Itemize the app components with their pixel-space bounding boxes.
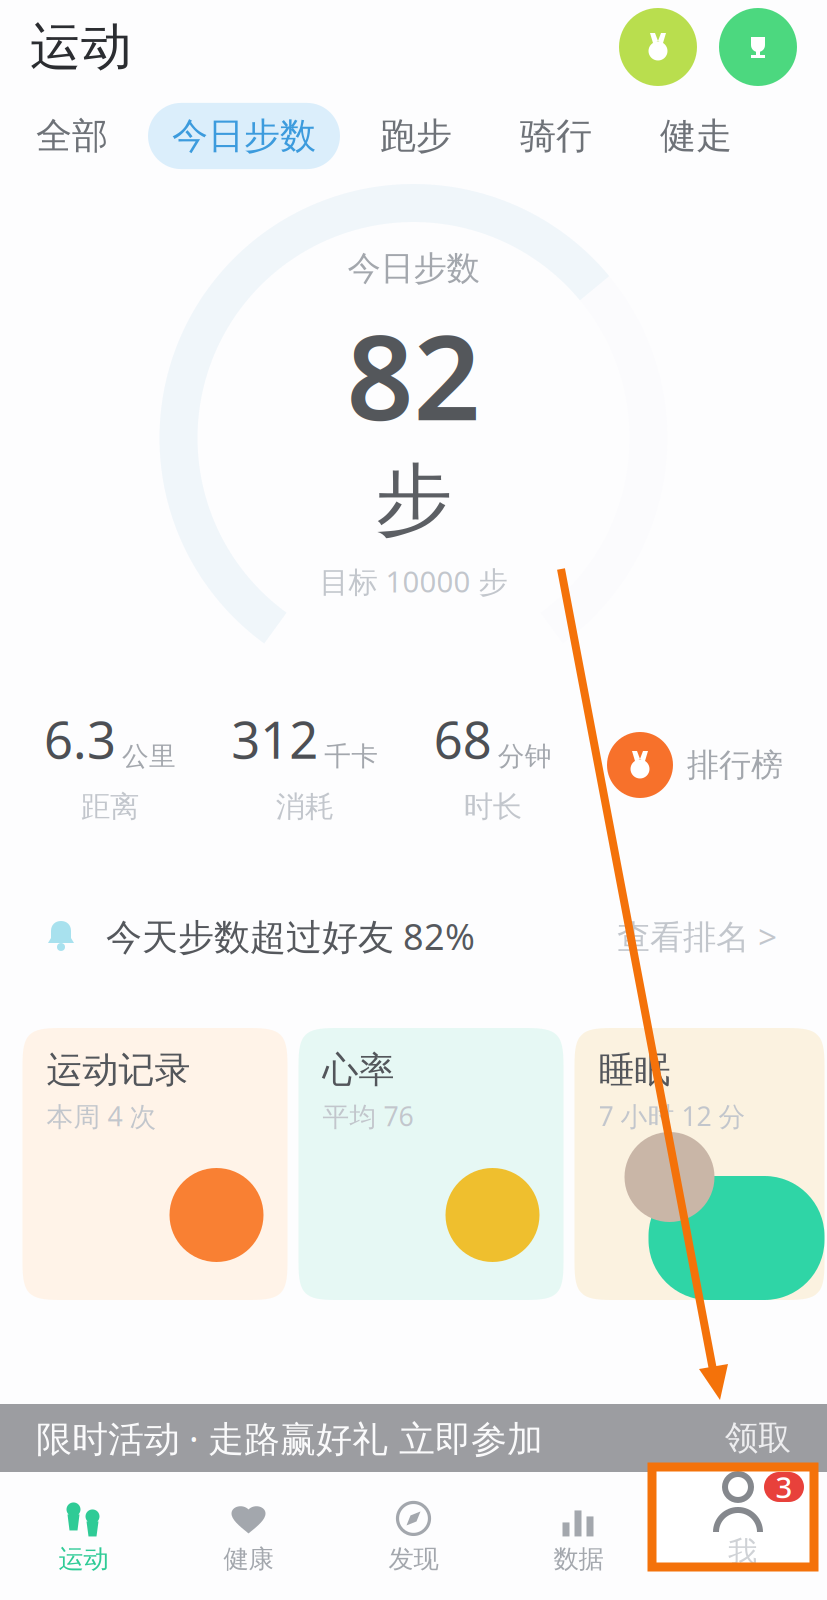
staticText: 心率 (322, 1048, 394, 1092)
staticText: 步 (375, 453, 452, 548)
button[interactable]: 健走 (636, 103, 756, 169)
staticText: 今日步数 (347, 248, 479, 289)
staticText: 目标 10000 步 (319, 562, 507, 601)
staticText: 今日步数 (172, 114, 316, 158)
staticText: 全部 (36, 114, 108, 158)
staticText: 82 (346, 297, 480, 453)
staticText: 312 (231, 705, 318, 773)
button[interactable]: 心率 (298, 1028, 563, 1300)
button[interactable]: 跑步 (356, 103, 476, 169)
staticText: 今天步数超过好友 82% (106, 912, 475, 960)
staticText: 跑步 (380, 114, 452, 158)
staticText: 数据 (553, 1543, 603, 1574)
button[interactable]: 运动记录 (22, 1028, 287, 1300)
staticText: 千卡 (324, 740, 378, 773)
button[interactable]: 限时活动 · 走路赢好礼 立即参加 (0, 1404, 827, 1472)
staticText: 本周 4 次 (46, 1098, 156, 1134)
button[interactable]: 发现 (331, 1480, 496, 1592)
staticText: 运动 (30, 16, 132, 78)
button[interactable]: 睡眠 (574, 1028, 824, 1300)
staticText: 时长 (464, 789, 522, 825)
staticText: 领取 (725, 1417, 791, 1458)
staticText: 消耗 (276, 789, 334, 825)
staticText: 睡眠 (598, 1048, 670, 1092)
staticText: 查看排名 > (617, 914, 777, 958)
button[interactable]: 排行榜 (607, 732, 783, 798)
button[interactable]: 今天步数超过好友 82% (0, 870, 827, 1002)
button[interactable]: Leaderboard (719, 8, 797, 86)
staticText: 7 小时 12 分 (598, 1098, 745, 1134)
button[interactable]: 健康 (166, 1480, 331, 1592)
staticText: 我 (731, 1543, 756, 1574)
staticText: 排行榜 (687, 745, 783, 785)
button[interactable]: Achievements (619, 8, 697, 86)
staticText: 骑行 (520, 114, 592, 158)
staticText: 我 (728, 1534, 757, 1570)
staticText: 运动记录 (46, 1048, 190, 1092)
staticText: 距离 (81, 789, 139, 825)
staticText: 6.3 (44, 705, 116, 773)
button[interactable]: 数据 (496, 1480, 661, 1592)
staticText: 限时活动 · 走路赢好礼 立即参加 (36, 1414, 543, 1462)
staticText: 分钟 (498, 740, 552, 773)
staticText: 发现 (388, 1543, 438, 1574)
button[interactable]: 运动 (1, 1480, 166, 1592)
staticText: 运动 (58, 1543, 108, 1574)
staticText: 68 (434, 705, 492, 773)
staticText: 公里 (122, 740, 176, 773)
button[interactable]: 全部 (12, 103, 132, 169)
button[interactable]: 骑行 (496, 103, 616, 169)
button[interactable]: 我 (661, 1480, 826, 1592)
staticText: 健走 (660, 114, 732, 158)
staticText: 健康 (223, 1543, 273, 1574)
staticText: 3 (775, 1467, 792, 1506)
staticText: 平均 76 (322, 1098, 413, 1134)
button[interactable]: 今日步数 (148, 103, 340, 169)
